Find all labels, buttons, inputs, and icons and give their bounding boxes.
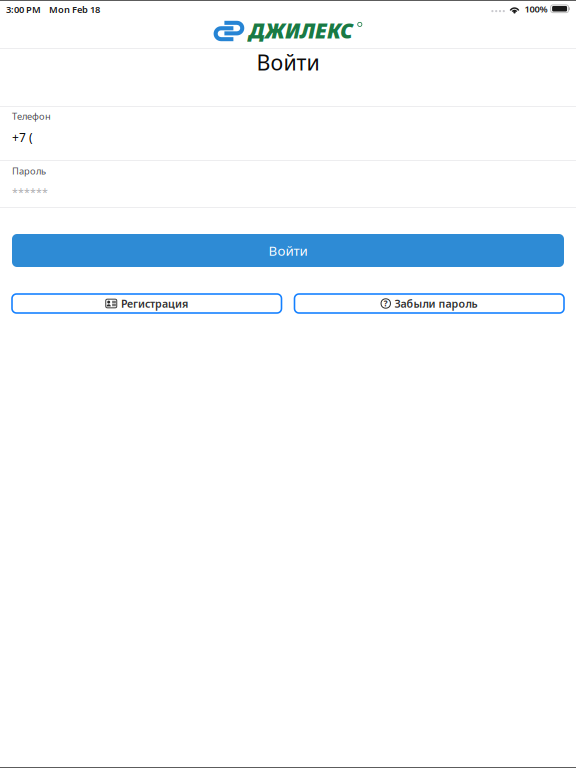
staticText: +7 ( [12,129,33,145]
staticText: 3:00 PM [6,3,41,16]
staticText: Войти [256,48,319,76]
staticText: Забыли пароль [394,296,477,311]
button[interactable]: Войти [12,234,564,267]
button[interactable]: ? [294,294,564,313]
staticText: ? [384,298,388,309]
staticText: ****** [12,185,48,199]
staticText: Войти [268,242,307,259]
staticText: 100% [525,3,548,15]
staticText: ДЖИЛЕКС [249,16,353,44]
staticText: Телефон [12,110,51,122]
button[interactable]: Регистрация [12,294,281,313]
staticText: Mon Feb 18 [49,3,100,16]
staticText: Пароль [12,165,46,177]
staticText: Регистрация [121,296,188,311]
